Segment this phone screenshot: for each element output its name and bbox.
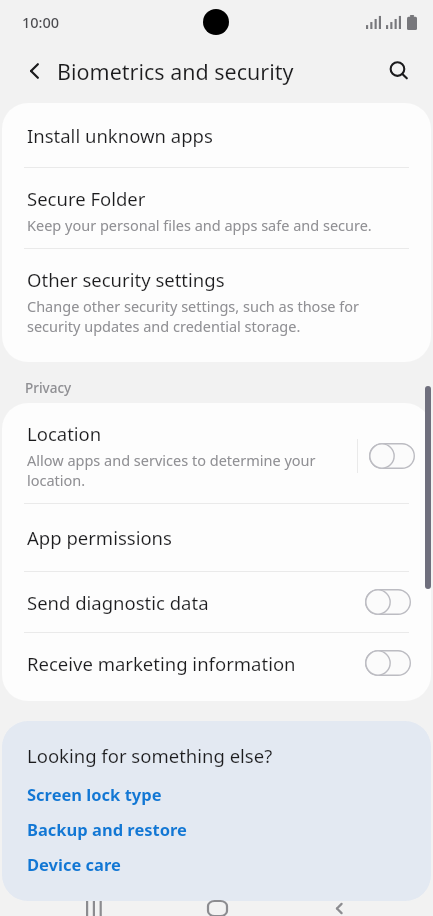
button[interactable]: Recent apps: [66, 901, 122, 916]
staticText: Keep your personal files and apps safe a…: [27, 215, 372, 235]
staticText: Other security settings: [27, 267, 225, 292]
staticText: Allow apps and services to determine you…: [27, 450, 316, 490]
staticText: Location: [27, 421, 102, 446]
button[interactable]: Search: [378, 50, 420, 92]
button[interactable]: Toggle off: [365, 589, 411, 615]
staticText: App permissions: [27, 525, 172, 550]
button[interactable]: Home: [189, 901, 245, 916]
staticText: Backup and restore: [27, 818, 187, 840]
staticText: Looking for something else?: [27, 743, 273, 768]
staticText: Biometrics and security: [57, 57, 294, 86]
button[interactable]: Toggle off: [365, 650, 411, 676]
button[interactable]: Secure Folder: [2, 168, 431, 248]
staticText: Device care: [27, 853, 121, 875]
button[interactable]: App permissions: [2, 504, 431, 571]
button[interactable]: Back: [15, 51, 55, 91]
button[interactable]: Device care: [27, 853, 121, 875]
staticText: Privacy: [25, 379, 72, 397]
button[interactable]: Install unknown apps: [2, 103, 431, 167]
staticText: Change other security settings, such as …: [27, 296, 360, 336]
staticText: Send diagnostic data: [27, 590, 365, 615]
staticText: Install unknown apps: [27, 123, 213, 148]
button[interactable]: Backup and restore: [27, 818, 187, 840]
button[interactable]: Receive marketing information: [2, 633, 431, 693]
button[interactable]: Other security settings: [2, 249, 431, 349]
staticText: Secure Folder: [27, 186, 146, 211]
button[interactable]: Back: [311, 901, 367, 916]
button[interactable]: Screen lock type: [27, 783, 162, 805]
staticText: Screen lock type: [27, 783, 162, 805]
staticText: 10:00: [22, 12, 60, 32]
staticText: Receive marketing information: [27, 651, 365, 676]
button[interactable]: Toggle off: [369, 443, 415, 469]
button[interactable]: Location: [2, 403, 431, 503]
button[interactable]: Send diagnostic data: [2, 572, 431, 632]
